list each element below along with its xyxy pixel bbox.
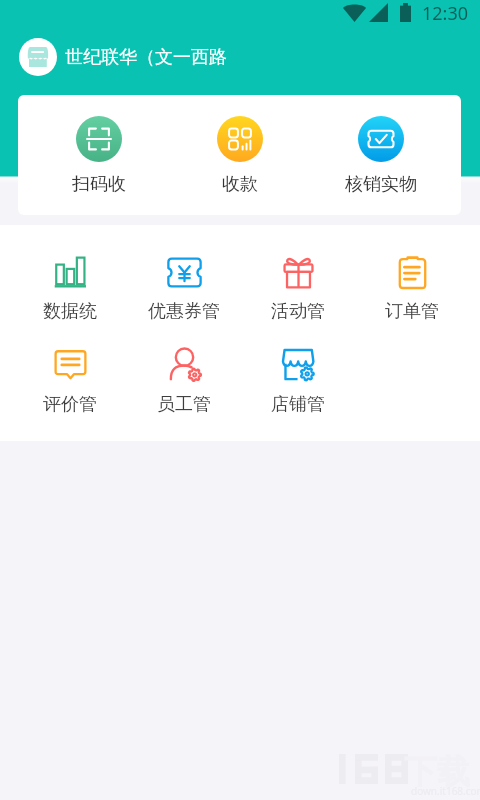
staticText: 数据统 xyxy=(43,300,97,323)
button[interactable]: 核销实物 xyxy=(310,95,451,215)
staticText: 扫码收 xyxy=(72,173,126,196)
button[interactable]: 收款 xyxy=(169,95,310,215)
button[interactable]: 店铺管 xyxy=(241,350,355,416)
button[interactable]: Store profile xyxy=(19,38,57,76)
staticText: 收款 xyxy=(222,173,258,196)
button[interactable]: 数据统 xyxy=(13,257,127,323)
staticText: 店铺管 xyxy=(271,393,325,416)
staticText: 世纪联华（文一西路 xyxy=(65,46,227,69)
button[interactable]: 评价管 xyxy=(13,350,127,416)
button[interactable]: 扫码收 xyxy=(28,95,169,215)
button[interactable]: 活动管 xyxy=(241,257,355,323)
staticText: 核销实物 xyxy=(345,173,417,196)
staticText: 员工管 xyxy=(157,393,211,416)
staticText: 优惠券管 xyxy=(148,300,220,323)
button[interactable]: 员工管 xyxy=(127,350,241,416)
staticText: 12:30 xyxy=(422,1,469,26)
button[interactable]: 优惠券管 xyxy=(127,257,241,323)
staticText: 订单管 xyxy=(385,300,439,323)
staticText: 评价管 xyxy=(43,393,97,416)
staticText: 活动管 xyxy=(271,300,325,323)
button[interactable]: 订单管 xyxy=(355,257,469,323)
